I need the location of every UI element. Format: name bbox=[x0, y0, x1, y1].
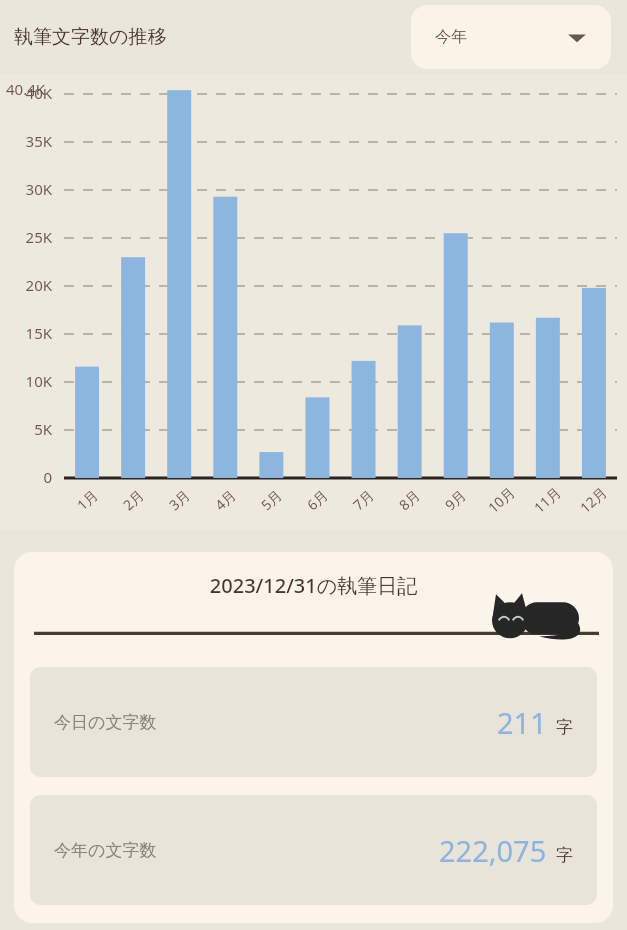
staticText: 今日の文字数 bbox=[54, 712, 157, 733]
staticText: 10K bbox=[0, 371, 52, 391]
staticText: 222,075 bbox=[439, 831, 547, 870]
staticText: 今年の文字数 bbox=[54, 840, 157, 861]
staticText: 30K bbox=[0, 179, 52, 199]
button[interactable]: 今年 bbox=[411, 5, 611, 69]
staticText: 1月 bbox=[73, 485, 102, 514]
staticText: 9月 bbox=[441, 485, 470, 514]
staticText: 5月 bbox=[257, 485, 286, 514]
staticText: 6月 bbox=[303, 485, 332, 514]
staticText: 10月 bbox=[484, 482, 519, 517]
staticText: 5K bbox=[0, 419, 52, 439]
staticText: 0 bbox=[0, 467, 52, 487]
other: Change period bbox=[567, 27, 587, 47]
staticText: 40K bbox=[0, 83, 52, 103]
staticText: 15K bbox=[0, 323, 52, 343]
staticText: 2月 bbox=[119, 485, 148, 514]
staticText: 12月 bbox=[576, 482, 611, 517]
staticText: 11月 bbox=[530, 482, 565, 517]
staticText: 7月 bbox=[349, 485, 378, 514]
staticText: 4月 bbox=[211, 485, 240, 514]
staticText: 今年 bbox=[435, 27, 467, 47]
staticText: 3月 bbox=[165, 485, 194, 514]
button[interactable]: 今日の文字数 bbox=[30, 667, 597, 777]
staticText: 25K bbox=[0, 227, 52, 247]
button[interactable]: 今年の文字数 bbox=[30, 795, 597, 905]
staticText: 20K bbox=[0, 275, 52, 295]
staticText: 8月 bbox=[395, 485, 424, 514]
staticText: 211 bbox=[497, 703, 547, 742]
staticText: 字 bbox=[556, 717, 573, 738]
staticText: 字 bbox=[556, 845, 573, 866]
staticText: 35K bbox=[0, 131, 52, 151]
staticText: 40.4K bbox=[6, 79, 46, 99]
staticText: 執筆文字数の推移 bbox=[14, 25, 167, 49]
staticText: 2023/12/31の執筆日記 bbox=[14, 572, 613, 599]
